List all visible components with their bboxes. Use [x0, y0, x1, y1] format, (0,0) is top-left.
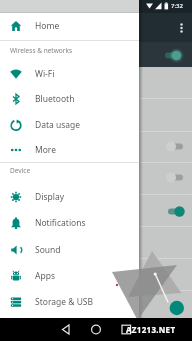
button[interactable]: Storage & USB: [0, 289, 139, 315]
staticText: Storage & USB: [35, 296, 94, 308]
button[interactable]: Data usage: [0, 112, 139, 138]
staticText: Wi-Fi: [35, 68, 55, 80]
button[interactable]: Bluetooth: [0, 86, 139, 112]
button[interactable]: Home: [0, 13, 139, 39]
button[interactable]: [56, 318, 76, 341]
button[interactable]: [116, 318, 136, 341]
staticText: More: [35, 144, 56, 156]
button[interactable]: More: [0, 137, 139, 163]
staticText: 7:32: [171, 2, 183, 10]
button[interactable]: [86, 318, 106, 341]
button[interactable]: [164, 172, 186, 183]
button[interactable]: Wi-Fi: [0, 61, 139, 87]
staticText: AZ1213.NET: [126, 324, 176, 335]
button[interactable]: [178, 21, 185, 34]
button[interactable]: [165, 206, 187, 217]
staticText: Data usage: [35, 119, 81, 131]
button[interactable]: Sound: [0, 237, 139, 263]
staticText: Apps: [35, 270, 55, 282]
button[interactable]: [162, 50, 184, 61]
staticText: Display: [35, 191, 64, 203]
button[interactable]: Apps: [0, 263, 139, 289]
staticText: Home: [35, 20, 60, 32]
staticText: Notifications: [35, 217, 86, 229]
button[interactable]: [164, 141, 186, 152]
button[interactable]: Notifications: [0, 210, 139, 236]
staticText: Device: [10, 166, 31, 175]
button[interactable]: Display: [0, 184, 139, 210]
staticText: Wireless & networks: [10, 46, 72, 55]
staticText: Bluetooth: [35, 93, 75, 105]
staticText: Sound: [35, 244, 61, 256]
